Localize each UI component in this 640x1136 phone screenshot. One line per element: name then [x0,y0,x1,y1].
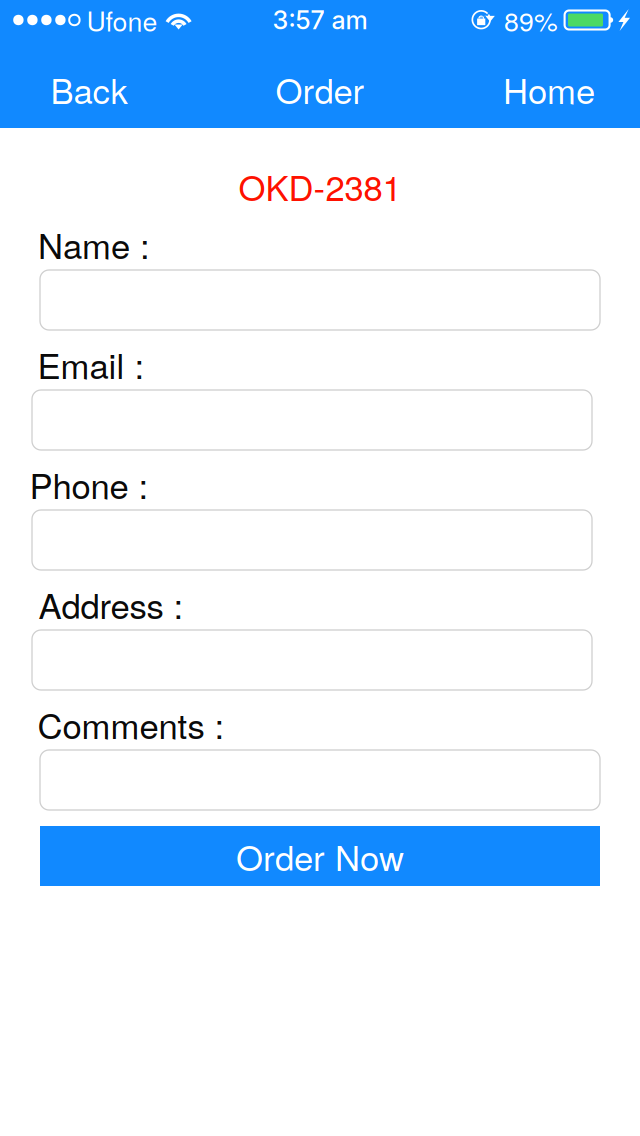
staticText: Home [503,64,595,114]
button[interactable]: Phone [32,510,592,570]
button[interactable]: Back [9,49,169,129]
staticText: Address : [38,579,183,629]
staticText: Order Now [236,831,404,881]
staticText: Order [275,64,364,114]
staticText: 3:57 am [272,5,367,35]
staticText: Comments : [37,699,224,749]
button[interactable]: Order Now [40,826,600,886]
staticText: Ufone [87,1,158,39]
staticText: Name : [38,219,150,269]
staticText: OKD-2381 [238,161,401,211]
button[interactable]: Name [40,270,600,330]
staticText: Back [50,64,127,114]
button[interactable]: Address [32,630,592,690]
button[interactable]: Email [32,390,592,450]
staticText: Email : [37,339,144,389]
button[interactable]: Home [469,49,629,129]
staticText: 89% [504,1,558,39]
staticText: Phone : [29,459,148,509]
button[interactable]: Comments [40,750,600,810]
